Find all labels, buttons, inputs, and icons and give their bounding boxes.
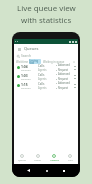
staticText: Agents [38, 68, 47, 72]
staticText: seconds [21, 77, 31, 80]
button[interactable]: 1:03 [14, 72, 78, 81]
button[interactable]: Menu [17, 47, 21, 51]
button[interactable]: Agents [30, 145, 46, 164]
button[interactable]: Calls [62, 145, 78, 164]
staticText: Advanced [58, 72, 70, 76]
staticText: Calls [38, 64, 45, 68]
staticText: Request [58, 77, 68, 81]
staticText: Calls [38, 82, 45, 86]
staticText: Serving now [29, 59, 41, 64]
staticText: Queues [24, 46, 39, 51]
staticText: Advanced [58, 63, 70, 67]
staticText: seconds [21, 86, 31, 89]
staticText: Live queue view [17, 3, 76, 14]
staticText: Waiting in queue [43, 60, 65, 64]
staticText: Request [58, 86, 68, 90]
staticText: 1:04 [21, 64, 28, 68]
button[interactable]: Menu [14, 44, 78, 53]
staticText: Agents [38, 86, 47, 90]
staticText: Request [58, 68, 68, 72]
staticText: Calls [38, 73, 45, 77]
staticText: Calls [68, 159, 73, 162]
button[interactable]: 1:15 [14, 81, 78, 90]
button[interactable]: 1:04 [14, 63, 78, 72]
staticText: Advanced [58, 81, 70, 85]
staticText: Network [50, 159, 59, 162]
staticText: with statistics [21, 15, 72, 26]
staticText: Wait time [16, 60, 29, 64]
staticText: 1:15 [21, 82, 28, 86]
button[interactable]: Queues [14, 145, 30, 164]
staticText: Agents [34, 159, 42, 162]
other: Back [27, 169, 30, 172]
button[interactable]: Search [14, 53, 78, 59]
staticText: Agents [38, 77, 47, 81]
staticText: 1:03 [21, 73, 28, 77]
staticText: seconds [21, 68, 31, 71]
staticText: Queues [18, 159, 26, 162]
staticText: Search [21, 54, 32, 58]
button[interactable]: Network [46, 145, 62, 164]
button[interactable]: Serving now [29, 59, 41, 64]
